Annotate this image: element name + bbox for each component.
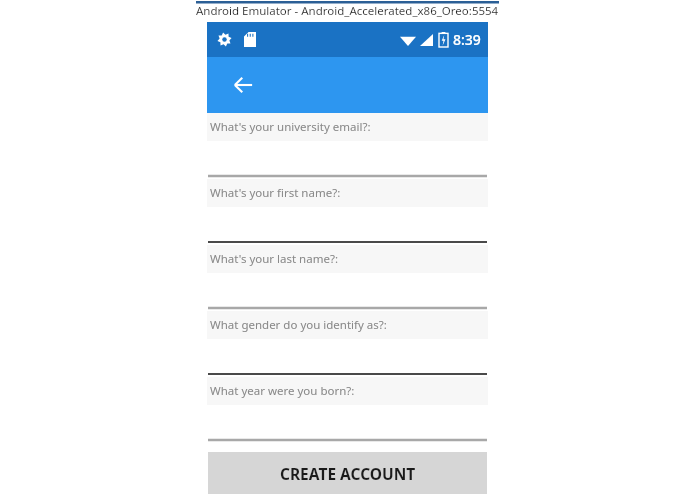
button[interactable]: Back	[223, 65, 263, 105]
button[interactable]: What's your last name?:	[207, 245, 488, 273]
staticText: Android Emulator - Android_Accelerated_x…	[196, 3, 499, 19]
button[interactable]: CREATE ACCOUNT	[208, 452, 487, 494]
staticText: CREATE ACCOUNT	[280, 463, 416, 484]
staticText: What's your last name?:	[210, 251, 338, 267]
button[interactable]: What's your university email?:	[207, 113, 488, 141]
staticText: What's your university email?:	[210, 119, 371, 135]
staticText: What's your first name?:	[210, 185, 341, 201]
button[interactable]: What gender do you identify as?:	[207, 311, 488, 339]
button[interactable]: What year were you born?:	[207, 377, 488, 405]
button[interactable]: What's your first name?:	[207, 179, 488, 207]
staticText: What year were you born?:	[210, 383, 355, 399]
staticText: What gender do you identify as?:	[210, 317, 387, 333]
staticText: 8:39	[453, 30, 481, 49]
